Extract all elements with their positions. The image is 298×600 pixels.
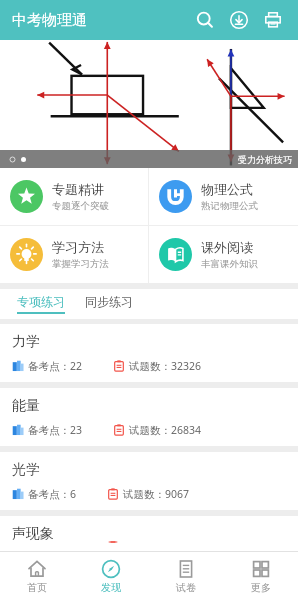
staticText: 受力分析技巧 — [238, 154, 292, 165]
button[interactable]: 发现 — [74, 552, 148, 600]
staticText: 掌握学习方法 — [52, 258, 109, 270]
button[interactable]: 学习方法 — [0, 226, 148, 283]
staticText: 同步练习 — [85, 294, 133, 309]
button[interactable]: 专题精讲 — [0, 168, 148, 225]
staticText: 备考点：22 — [28, 359, 83, 373]
button[interactable]: Banner 受力分析技巧 — [0, 40, 298, 168]
button[interactable]: 声现象 — [0, 516, 298, 551]
staticText: 试卷 — [176, 581, 196, 594]
button[interactable]: 试卷 — [148, 552, 223, 600]
staticText: 更多 — [251, 581, 271, 594]
staticText: 能量 — [12, 397, 40, 415]
button[interactable]: Print — [256, 3, 290, 37]
staticText: 力学 — [12, 333, 40, 351]
staticText: 试题数：26834 — [129, 423, 202, 437]
button[interactable]: 同步练习 — [82, 294, 136, 314]
staticText: 专项练习 — [17, 294, 65, 309]
button[interactable]: 更多 — [223, 552, 298, 600]
staticText: 学习方法 — [52, 239, 104, 255]
button[interactable]: 能量 — [0, 388, 298, 446]
button[interactable]: 光学 — [0, 452, 298, 510]
button[interactable]: 物理公式 — [149, 168, 298, 225]
staticText: 熟记物理公式 — [201, 200, 258, 212]
staticText: 备考点：23 — [28, 423, 83, 437]
staticText: 中考物理通 — [12, 11, 87, 30]
staticText: 课外阅读 — [201, 239, 253, 255]
button[interactable]: 首页 — [0, 552, 74, 600]
button[interactable]: Search — [188, 3, 222, 37]
staticText: 丰富课外知识 — [201, 258, 258, 270]
button[interactable]: 专项练习 — [14, 294, 68, 314]
button[interactable]: 课外阅读 — [149, 226, 298, 283]
staticText: 专题精讲 — [52, 181, 104, 197]
button[interactable]: Download — [222, 3, 256, 37]
staticText: 光学 — [12, 461, 40, 479]
staticText: 专题逐个突破 — [52, 200, 109, 212]
staticText: 发现 — [101, 581, 121, 594]
staticText: 备考点：6 — [28, 487, 77, 501]
button[interactable]: 力学 — [0, 324, 298, 382]
staticText: 物理公式 — [201, 181, 253, 197]
staticText: 试题数：32326 — [129, 359, 202, 373]
staticText: 声现象 — [12, 525, 54, 542]
staticText: 试题数：9067 — [123, 487, 190, 501]
staticText: 首页 — [27, 581, 47, 594]
